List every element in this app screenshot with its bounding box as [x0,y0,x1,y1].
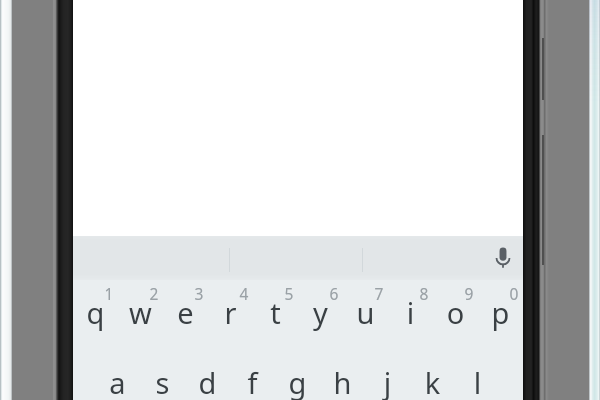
button[interactable]: a [95,354,140,400]
staticText: d [185,363,230,400]
button[interactable]: p [478,284,523,351]
button[interactable]: u [343,284,388,351]
staticText: 8 [417,283,431,304]
staticText: 9 [462,283,476,304]
staticText: 6 [327,283,341,304]
staticText: i [388,293,433,332]
button[interactable]: h [320,354,365,400]
staticText: j [365,363,410,400]
staticText: f [230,363,275,400]
staticText: r [208,293,253,332]
staticText: q [73,293,118,332]
button[interactable]: r [208,284,253,351]
staticText: 1 [102,283,116,304]
staticText: a [95,363,140,400]
button[interactable]: g [275,354,320,400]
staticText: 2 [147,283,161,304]
button[interactable]: e [163,284,208,351]
staticText: u [343,293,388,332]
button[interactable]: t [253,284,298,351]
button[interactable]: Voice input [482,236,524,280]
staticText: 0 [507,283,521,304]
button[interactable]: f [230,354,275,400]
staticText: p [478,293,523,332]
staticText: 4 [237,283,251,304]
button[interactable]: s [140,354,185,400]
button[interactable]: d [185,354,230,400]
staticText: e [163,293,208,332]
staticText: 7 [372,283,386,304]
staticText: y [298,293,343,332]
button[interactable]: q [73,284,118,351]
staticText: k [410,363,455,400]
staticText: h [320,363,365,400]
button[interactable]: j [365,354,410,400]
button[interactable]: y [298,284,343,351]
staticText: 5 [282,283,296,304]
staticText: w [118,293,163,332]
button[interactable]: k [410,354,455,400]
staticText: t [253,293,298,332]
staticText: 3 [192,283,206,304]
staticText: g [275,363,320,400]
staticText: s [140,363,185,400]
button[interactable]: w [118,284,163,351]
button[interactable]: o [433,284,478,351]
staticText: l [455,363,500,400]
button[interactable]: l [455,354,500,400]
staticText: o [433,293,478,332]
button[interactable]: i [388,284,433,351]
